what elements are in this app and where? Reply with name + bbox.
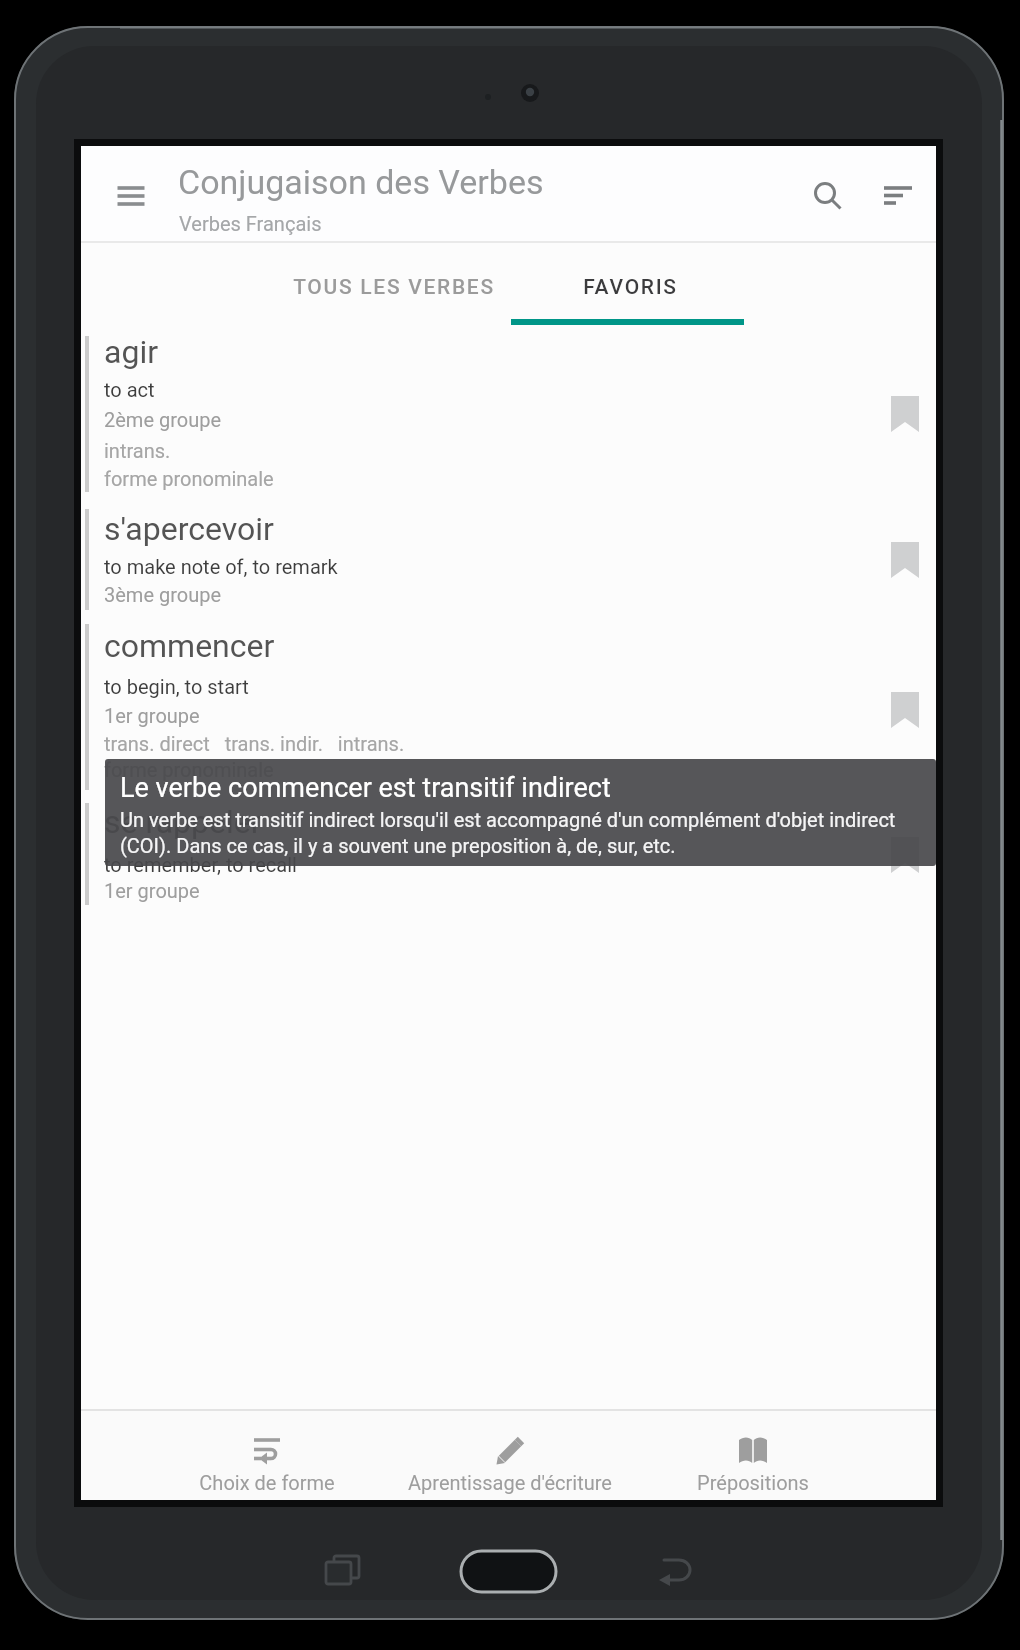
button[interactable] <box>81 507 936 624</box>
staticText: 1er groupe <box>104 879 200 902</box>
button[interactable]: TOUS LES VERBES <box>277 243 510 330</box>
staticText: Choix de forme <box>199 1471 335 1494</box>
button[interactable]: FAVORIS <box>514 243 747 330</box>
button[interactable]: Aprentissage d'écriture <box>380 1411 640 1499</box>
staticText: to make note of, to remark <box>104 555 338 578</box>
staticText: Le verbe commencer est transitif indirec… <box>120 772 611 804</box>
staticText: Un verbe est transitif indirect lorsqu'i… <box>120 808 896 831</box>
staticText: agir <box>104 333 158 371</box>
button[interactable] <box>81 628 936 794</box>
staticText: TOUS LES VERBES <box>293 275 495 300</box>
staticText: to begin, to start <box>104 675 249 698</box>
button[interactable]: Choix de forme <box>177 1411 357 1499</box>
button[interactable] <box>107 172 155 220</box>
staticText: to act <box>104 378 155 401</box>
staticText: to remember, to recall <box>104 853 297 876</box>
staticText: intrans. <box>104 439 171 462</box>
staticText: 3ème groupe <box>104 583 222 606</box>
button[interactable] <box>868 172 916 220</box>
button[interactable] <box>81 803 936 913</box>
staticText: Prépositions <box>697 1471 809 1494</box>
button[interactable] <box>81 332 936 504</box>
staticText: Aprentissage d'écriture <box>408 1471 612 1494</box>
staticText: s'apercevoir <box>104 510 274 548</box>
staticText: forme pronominale <box>104 467 274 490</box>
button[interactable]: Prépositions <box>663 1411 843 1499</box>
staticText: 1er groupe <box>104 704 200 727</box>
staticText: FAVORIS <box>583 275 678 300</box>
staticText: forme pronominale <box>104 758 274 781</box>
staticText: commencer <box>104 627 275 665</box>
staticText: (COI). Dans ce cas, il y a souvent une p… <box>120 834 676 857</box>
staticText: trans. direct trans. indir. intrans. <box>104 732 405 755</box>
button[interactable] <box>802 172 850 220</box>
staticText: Verbes Français <box>179 212 322 235</box>
staticText: Conjugaison des Verbes <box>178 162 544 202</box>
staticText: 2ème groupe <box>104 408 222 431</box>
staticText: se rappeler <box>104 803 262 841</box>
